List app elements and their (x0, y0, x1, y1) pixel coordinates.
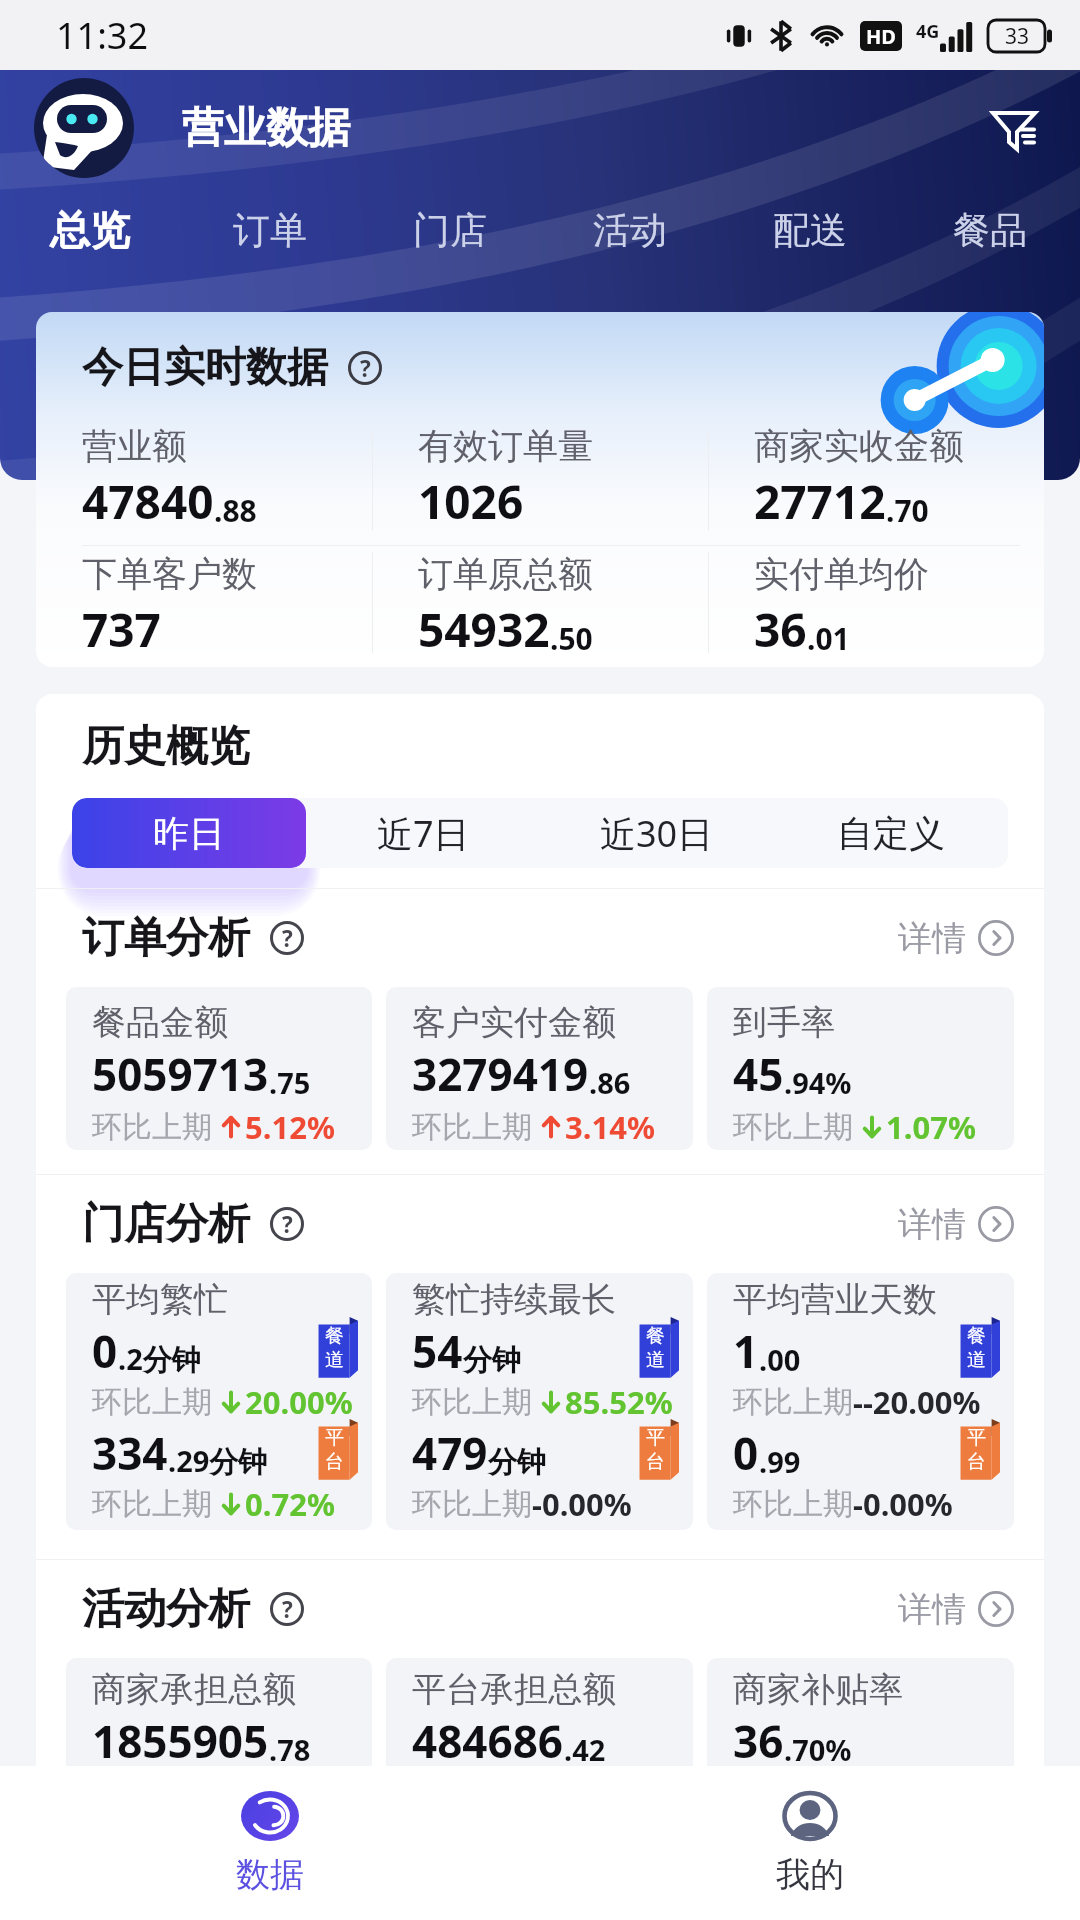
staticText: 今日实时数据 (82, 342, 328, 394)
staticText: 总览 (50, 205, 130, 255)
staticText: 数据 (236, 1853, 304, 1896)
staticText: 4G (916, 19, 940, 44)
staticText: 到手率 (733, 1001, 835, 1044)
button[interactable]: 近7日 (306, 798, 540, 868)
staticText: 环比上期 (733, 1108, 853, 1146)
staticText: 餐 (325, 1324, 344, 1348)
staticText: 3.14% (565, 1106, 655, 1148)
button[interactable]: 总览 (0, 190, 180, 270)
staticText: 分钟 (488, 1444, 546, 1481)
staticText: .50 (550, 618, 593, 659)
button[interactable]: 活动 (540, 190, 720, 270)
button[interactable]: Filter (976, 90, 1052, 166)
staticText: 1026 (418, 470, 524, 533)
staticText: 道 (967, 1348, 986, 1372)
staticText: .70% (784, 1730, 852, 1769)
staticText: -0.00% (853, 1483, 953, 1525)
button[interactable]: 详情 (898, 889, 1014, 987)
staticText: 分钟 (463, 1342, 521, 1379)
staticText: --20.00% (853, 1381, 981, 1423)
staticText: 详情 (898, 1588, 966, 1631)
staticText: 餐 (967, 1324, 986, 1348)
staticText: 昨日 (153, 811, 225, 856)
staticText: .42 (564, 1730, 606, 1769)
staticText: 环比上期 (733, 1485, 853, 1523)
staticText: 环比上期 (412, 1485, 532, 1523)
button[interactable]: 数据 (0, 1766, 540, 1920)
staticText: 环比上期 (733, 1383, 853, 1421)
staticText: 平 (967, 1426, 986, 1450)
staticText: .78 (269, 1730, 311, 1769)
staticText: 餐品金额 (92, 1001, 228, 1044)
staticText: 5.12% (245, 1106, 335, 1148)
staticText: 台 (967, 1450, 986, 1474)
staticText: 商家补贴率 (733, 1668, 903, 1711)
staticText: .00 (759, 1340, 801, 1379)
staticText: 1855905 (92, 1711, 269, 1771)
staticText: 5059713 (92, 1044, 269, 1104)
staticText: 餐品 (953, 207, 1027, 254)
staticText: .70 (886, 490, 929, 531)
staticText: 环比上期 (92, 1383, 212, 1421)
staticText: 1.07% (886, 1106, 976, 1148)
staticText: 订单 (233, 207, 307, 254)
staticText: 3279419 (412, 1044, 589, 1104)
staticText: 配送 (773, 207, 847, 254)
staticText: 订单原总额 (418, 552, 593, 596)
staticText: 27712 (754, 470, 886, 533)
button[interactable]: 昨日 (72, 798, 306, 868)
staticText: 商家实收金额 (754, 424, 964, 468)
button[interactable]: 近30日 (540, 798, 774, 868)
staticText: 实付单均价 (754, 552, 929, 596)
button[interactable]: 详情 (898, 1560, 1014, 1658)
staticText: 54 (412, 1321, 463, 1381)
staticText: 下单客户数 (82, 552, 257, 596)
staticText: ? (282, 923, 293, 954)
staticText: 85.52% (565, 1381, 673, 1423)
staticText: 环比上期 (412, 1383, 532, 1421)
staticText: 0.72% (245, 1483, 335, 1525)
staticText: 484686 (412, 1711, 564, 1771)
staticText: 营业额 (82, 424, 187, 468)
staticText: 近30日 (600, 809, 714, 858)
staticText: .94% (784, 1063, 852, 1102)
staticText: .2分钟 (118, 1339, 201, 1379)
staticText: ? (360, 353, 371, 384)
button[interactable]: 自定义 (774, 798, 1008, 868)
staticText: 0 (92, 1321, 118, 1381)
staticText: 近7日 (377, 809, 470, 858)
staticText: 道 (646, 1348, 665, 1372)
button[interactable]: 订单 (180, 190, 360, 270)
staticText: 门店 (413, 207, 487, 254)
staticText: 门店分析 (82, 1198, 250, 1251)
button[interactable]: 餐品 (900, 190, 1080, 270)
staticText: 1 (733, 1321, 759, 1381)
staticText: 订单分析 (82, 912, 250, 965)
staticText: ? (282, 1594, 293, 1625)
button[interactable]: 我的 (540, 1766, 1080, 1920)
staticText: 台 (325, 1450, 344, 1474)
staticText: ? (282, 1209, 293, 1240)
button[interactable]: 详情 (898, 1175, 1014, 1273)
staticText: 环比上期 (412, 1108, 532, 1146)
staticText: 36 (754, 598, 807, 661)
staticText: 平均营业天数 (733, 1278, 937, 1321)
staticText: .88 (214, 490, 257, 531)
staticText: 环比上期 (92, 1108, 212, 1146)
staticText: 平台承担总额 (412, 1668, 616, 1711)
staticText: 平均繁忙 (92, 1278, 228, 1321)
staticText: 平 (646, 1426, 665, 1450)
staticText: 334 (92, 1423, 168, 1483)
button[interactable]: 配送 (720, 190, 900, 270)
staticText: 479 (412, 1423, 488, 1483)
staticText: 20.00% (245, 1381, 353, 1423)
staticText: .99 (759, 1442, 801, 1481)
staticText: 33 (1005, 22, 1030, 51)
staticText: 平 (325, 1426, 344, 1450)
staticText: HD (866, 23, 896, 50)
staticText: 台 (646, 1450, 665, 1474)
button[interactable]: 门店 (360, 190, 540, 270)
staticText: 11:32 (56, 11, 149, 60)
staticText: 活动 (593, 207, 667, 254)
staticText: 活动分析 (82, 1583, 250, 1636)
